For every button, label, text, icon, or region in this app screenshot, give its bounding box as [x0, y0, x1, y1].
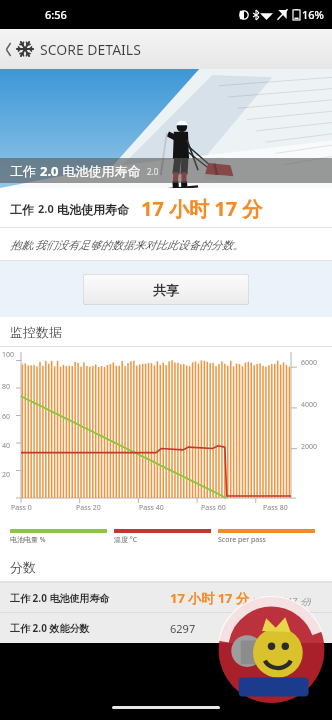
staticText: (17 小时 17 分) — [252, 595, 312, 607]
button[interactable]: Back — [0, 34, 16, 64]
staticText: 6000 — [301, 358, 318, 368]
staticText: Pass 20 — [76, 503, 101, 513]
staticText: 电池使用寿命 — [54, 201, 130, 217]
button[interactable]: 工作 2.0 电池使用寿命 — [0, 583, 332, 613]
staticText: 100 — [2, 350, 15, 360]
staticText: 分数 — [10, 559, 36, 575]
staticText: Pass 0 — [11, 503, 32, 513]
staticText: 40 — [2, 441, 11, 451]
staticText: SCORE DETAILS — [40, 40, 141, 59]
staticText: 2000 — [301, 442, 318, 452]
staticText: 17 小时 17 分 — [170, 589, 249, 607]
staticText: 2.0 — [38, 201, 54, 216]
staticText: 60 — [2, 412, 11, 422]
staticText: Pass 60 — [201, 503, 226, 513]
staticText: Score per pass — [218, 535, 266, 545]
staticText: Pass 40 — [139, 503, 164, 513]
staticText: 2.0 — [147, 166, 159, 177]
staticText: 电池电量 % — [10, 535, 46, 545]
button[interactable]: 共享 — [83, 274, 249, 305]
staticText: 4000 — [301, 400, 318, 410]
staticText: 抱歉,我们没有足够的数据来对比此设备的分数。 — [10, 237, 244, 252]
staticText: 温度 °C — [114, 535, 138, 545]
staticText: 6:56 — [45, 7, 67, 22]
staticText: 16% — [302, 7, 324, 22]
button[interactable]: 工作 2.0 效能分数 — [0, 613, 332, 643]
staticText: 电池使用寿命 — [59, 162, 141, 180]
staticText: 工作 — [10, 162, 40, 180]
staticText: 2.0 — [40, 162, 59, 180]
staticText: 20 — [2, 470, 11, 480]
staticText: Pass 80 — [263, 503, 288, 513]
staticText: 工作 2.0 效能分数 — [10, 621, 90, 635]
staticText: 17 小时 17 分 — [141, 195, 263, 222]
staticText: 工作 2.0 电池使用寿命 — [10, 591, 110, 605]
staticText: 80 — [2, 382, 11, 392]
staticText: 6297 — [170, 621, 196, 636]
staticText: 工作 — [10, 201, 38, 217]
staticText: 共享 — [153, 282, 179, 298]
staticText: 监控数据 — [10, 324, 62, 340]
